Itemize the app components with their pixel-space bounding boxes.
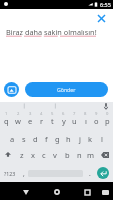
- staticText: y: [62, 116, 66, 126]
- staticText: Gönder: [57, 86, 76, 93]
- button[interactable]: Recent apps: [77, 182, 98, 200]
- button[interactable]: 8: [80, 110, 91, 128]
- button[interactable]: g: [52, 128, 63, 146]
- staticText: b: [65, 150, 70, 160]
- button[interactable]: h: [63, 128, 74, 146]
- button[interactable]: Home: [46, 182, 67, 200]
- staticText: Biraz daha sakin olmalısın!: [6, 27, 97, 37]
- button[interactable]: Close: [94, 11, 108, 25]
- staticText: m: [87, 150, 95, 160]
- staticText: 8: [84, 111, 87, 117]
- button[interactable]: Add photo: [4, 82, 19, 97]
- staticText: 6:55: [100, 1, 111, 8]
- button[interactable]: a: [6, 128, 18, 146]
- staticText: p: [105, 116, 110, 126]
- staticText: d: [33, 134, 38, 144]
- staticText: h: [66, 134, 71, 144]
- button[interactable]: Shift: [0, 146, 16, 164]
- staticText: x: [31, 150, 35, 160]
- button[interactable]: v: [49, 146, 61, 164]
- staticText: t: [51, 116, 54, 126]
- button[interactable]: 7: [69, 110, 80, 128]
- staticText: w: [15, 116, 21, 126]
- button[interactable]: z: [16, 146, 27, 164]
- staticText: 1: [5, 111, 8, 117]
- button[interactable]: m: [85, 146, 97, 164]
- staticText: ?123: [4, 170, 16, 177]
- staticText: .: [89, 169, 91, 178]
- staticText: s: [22, 134, 26, 144]
- button[interactable]: Back: [15, 182, 36, 200]
- staticText: g: [55, 134, 60, 144]
- staticText: a: [10, 134, 15, 144]
- staticText: j: [79, 134, 81, 144]
- button[interactable]: Hide keyboard: [97, 182, 113, 200]
- button[interactable]: Voice input: [101, 102, 110, 110]
- staticText: n: [77, 150, 82, 160]
- staticText: 6: [62, 111, 65, 117]
- staticText: z: [20, 150, 24, 160]
- staticText: r: [40, 116, 44, 126]
- staticText: v: [53, 150, 57, 160]
- staticText: 2: [17, 111, 20, 117]
- button[interactable]: n: [73, 146, 85, 164]
- button[interactable]: l: [96, 128, 107, 146]
- button[interactable]: 6: [58, 110, 69, 128]
- staticText: e: [28, 116, 33, 126]
- button[interactable]: s: [18, 128, 30, 146]
- staticText: ,: [23, 169, 25, 178]
- button[interactable]: 0: [102, 110, 113, 128]
- staticText: o: [94, 116, 99, 126]
- button[interactable]: ?123: [1, 167, 19, 180]
- button[interactable]: c: [38, 146, 49, 164]
- staticText: q: [4, 116, 9, 126]
- staticText: c: [42, 150, 46, 160]
- staticText: f: [45, 134, 48, 144]
- staticText: 5: [51, 111, 54, 117]
- button[interactable]: x: [27, 146, 38, 164]
- staticText: k: [88, 134, 93, 144]
- staticText: 0: [106, 111, 109, 117]
- button[interactable]: Enter: [97, 167, 109, 179]
- button[interactable]: 9: [91, 110, 102, 128]
- button[interactable]: j: [74, 128, 85, 146]
- staticText: 3: [29, 111, 32, 117]
- button[interactable]: 4: [36, 110, 47, 128]
- button[interactable]: f: [41, 128, 52, 146]
- button[interactable]: 5: [47, 110, 58, 128]
- button[interactable]: 2: [12, 110, 24, 128]
- button[interactable]: d: [30, 128, 41, 146]
- staticText: 9: [95, 111, 98, 117]
- staticText: 7: [73, 111, 76, 117]
- staticText: 4: [40, 111, 43, 117]
- staticText: l: [101, 134, 103, 144]
- button[interactable]: b: [61, 146, 73, 164]
- button[interactable]: ,: [19, 167, 28, 180]
- button[interactable]: 1: [0, 110, 12, 128]
- staticText: ı: [85, 116, 87, 126]
- button[interactable]: Backspace: [97, 146, 113, 164]
- button[interactable]: k: [85, 128, 96, 146]
- button[interactable]: 3: [24, 110, 36, 128]
- button[interactable]: Gönder: [25, 82, 108, 97]
- staticText: u: [72, 116, 77, 126]
- button[interactable]: .: [85, 167, 94, 180]
